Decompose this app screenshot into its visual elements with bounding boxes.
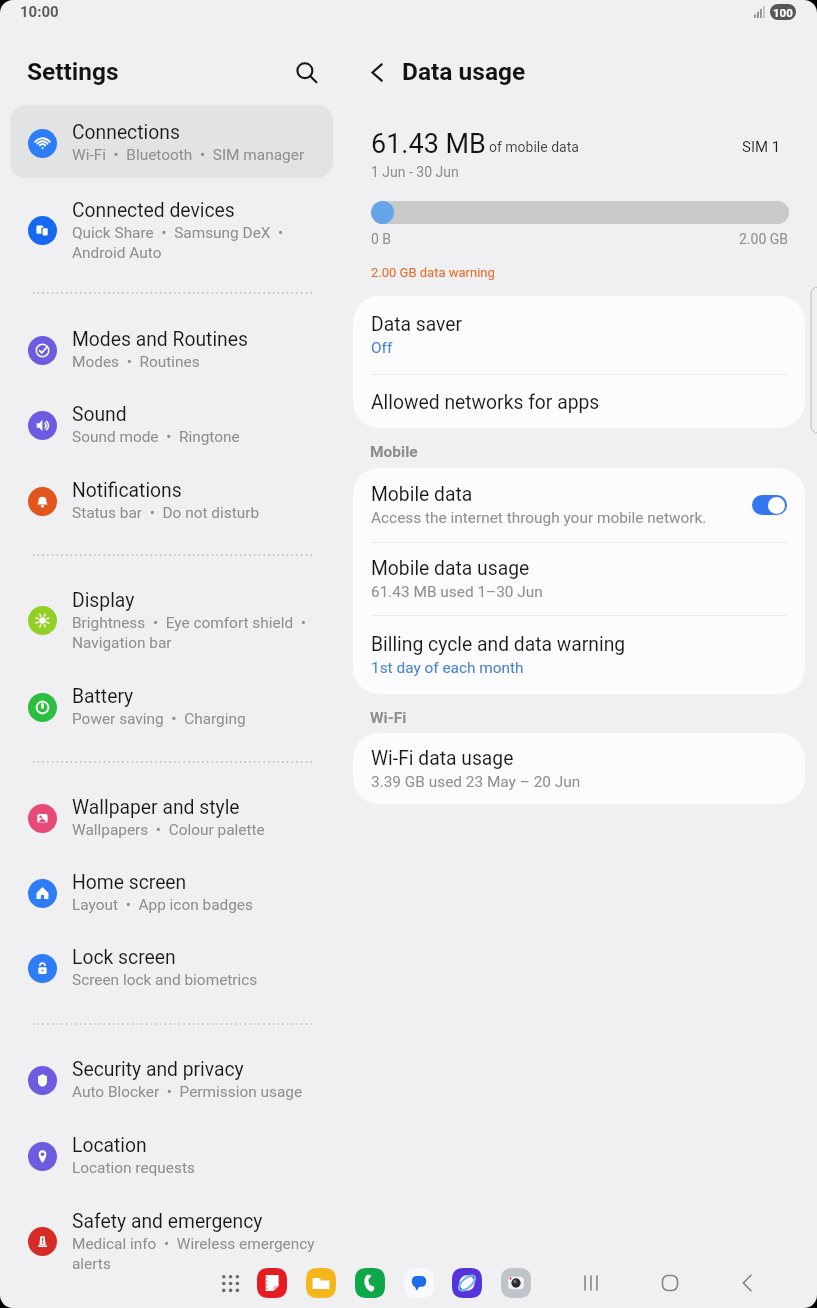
button[interactable]: Back: [357, 52, 397, 92]
staticText: Medical info • Wireless emergency: [72, 1233, 315, 1253]
staticText: Sound mode • Ringtone: [72, 426, 240, 446]
staticText: Connected devices: [72, 199, 235, 222]
staticText: Safety and emergency: [72, 1210, 263, 1233]
staticText: Mobile data usage: [371, 556, 530, 580]
button[interactable]: [10, 390, 333, 460]
staticText: Layout • App icon badges: [72, 894, 253, 914]
staticText: 0 B: [371, 229, 392, 247]
button[interactable]: Recents: [570, 1262, 612, 1304]
button[interactable]: [10, 315, 333, 385]
staticText: Wi-Fi data usage: [371, 746, 514, 770]
staticText: 3.39 GB used 23 May – 20 Jun: [371, 770, 581, 792]
staticText: SIM 1: [742, 136, 781, 156]
staticText: Mobile data: [371, 482, 473, 506]
button[interactable]: Billing cycle and data warning: [353, 616, 805, 694]
staticText: 61.43 MB used 1–30 Jun: [371, 580, 543, 602]
button[interactable]: Home: [649, 1262, 691, 1304]
button[interactable]: Samsung Notes: [257, 1268, 287, 1298]
staticText: Display: [72, 589, 135, 612]
button[interactable]: Internet: [452, 1268, 482, 1298]
staticText: Wi-Fi: [370, 707, 407, 727]
staticText: Data usage: [402, 54, 526, 86]
button[interactable]: Mobile data usage: [353, 543, 805, 615]
staticText: Power saving • Charging: [72, 708, 246, 728]
staticText: 2.00 GB: [739, 229, 789, 247]
button[interactable]: Data saver: [353, 296, 805, 374]
staticText: Settings: [27, 54, 119, 86]
button[interactable]: [10, 933, 333, 1003]
staticText: Home screen: [72, 871, 187, 894]
staticText: Access the internet through your mobile …: [371, 506, 707, 528]
button[interactable]: Search: [286, 52, 326, 92]
staticText: Modes • Routines: [72, 351, 200, 371]
staticText: 100: [773, 5, 793, 20]
button[interactable]: [10, 1197, 333, 1286]
button[interactable]: [10, 576, 333, 665]
staticText: 1 Jun - 30 Jun: [371, 162, 459, 180]
staticText: Billing cycle and data warning: [371, 632, 626, 656]
staticText: Location: [72, 1134, 147, 1157]
staticText: Wallpapers • Colour palette: [72, 819, 265, 839]
staticText: Status bar • Do not disturb: [72, 502, 260, 522]
staticText: Modes and Routines: [72, 328, 248, 351]
button[interactable]: [10, 783, 333, 853]
button[interactable]: [10, 1045, 333, 1115]
button[interactable]: Mobile data: [353, 468, 805, 542]
staticText: Navigation bar: [72, 632, 172, 652]
button[interactable]: Back: [726, 1262, 768, 1304]
staticText: Location requests: [72, 1157, 195, 1177]
staticText: Wallpaper and style: [72, 796, 240, 819]
staticText: Android Auto: [72, 242, 162, 262]
button[interactable]: Messages: [404, 1268, 434, 1298]
staticText: Off: [371, 336, 393, 358]
staticText: 10:00: [20, 1, 59, 21]
staticText: of mobile data: [489, 137, 579, 155]
staticText: 1st day of each month: [371, 656, 524, 678]
button[interactable]: Phone: [355, 1268, 385, 1298]
staticText: Notifications: [72, 479, 182, 502]
staticText: Auto Blocker • Permission usage: [72, 1081, 303, 1101]
button[interactable]: My Files: [306, 1268, 336, 1298]
staticText: Battery: [72, 685, 134, 708]
button[interactable]: [10, 858, 333, 928]
staticText: Security and privacy: [72, 1058, 244, 1081]
button[interactable]: Mobile data toggle: [752, 495, 787, 515]
staticText: 61.43 MB: [371, 128, 486, 159]
button[interactable]: [10, 1121, 333, 1191]
button[interactable]: Allowed networks for apps: [353, 375, 805, 428]
button[interactable]: Apps: [210, 1263, 250, 1303]
staticText: Quick Share • Samsung DeX •: [72, 222, 284, 242]
staticText: Data saver: [371, 312, 463, 336]
button[interactable]: Camera: [501, 1268, 531, 1298]
staticText: alerts: [72, 1253, 111, 1273]
staticText: Lock screen: [72, 946, 176, 969]
staticText: Wi-Fi • Bluetooth • SIM manager: [72, 144, 305, 164]
staticText: Allowed networks for apps: [371, 390, 600, 414]
button[interactable]: Wi-Fi data usage: [353, 733, 805, 804]
staticText: Sound: [72, 403, 127, 426]
button[interactable]: [10, 672, 333, 742]
button[interactable]: [10, 466, 333, 536]
staticText: Mobile: [370, 441, 418, 461]
button[interactable]: [10, 105, 333, 178]
staticText: Brightness • Eye comfort shield •: [72, 612, 306, 632]
button[interactable]: [10, 186, 333, 275]
staticText: 2.00 GB data warning: [371, 263, 495, 280]
staticText: Connections: [72, 121, 180, 144]
staticText: Screen lock and biometrics: [72, 969, 258, 989]
